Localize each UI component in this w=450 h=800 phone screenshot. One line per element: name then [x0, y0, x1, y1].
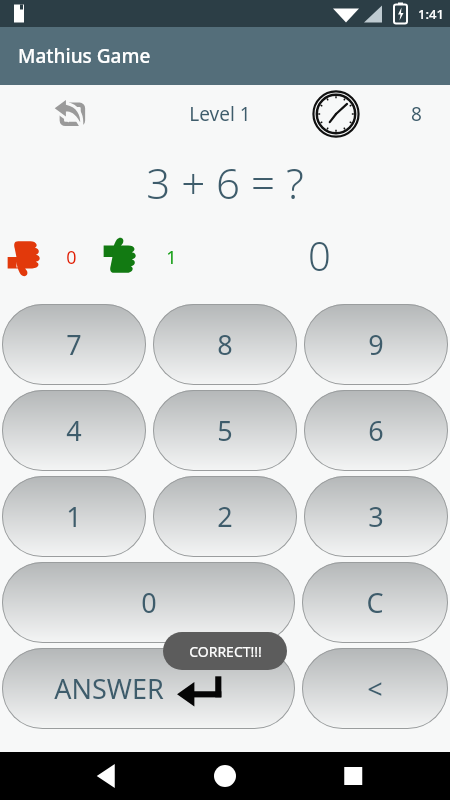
staticText: 7 — [66, 326, 82, 363]
staticText: C — [366, 584, 384, 621]
staticText: 3 — [368, 498, 384, 535]
button[interactable]: 6 — [304, 390, 448, 471]
button[interactable]: 3 — [304, 476, 448, 557]
button[interactable]: 7 — [2, 304, 146, 385]
button[interactable]: 1 — [2, 476, 146, 557]
staticText: 3 + 6 = ? — [146, 154, 304, 211]
staticText: 0 — [141, 584, 157, 621]
staticText: 1 — [166, 245, 177, 270]
button[interactable]: 5 — [153, 390, 297, 471]
button[interactable]: 4 — [2, 390, 146, 471]
button[interactable]: ANSWER — [2, 648, 295, 729]
staticText: Mathius Game — [18, 43, 151, 69]
staticText: 9 — [368, 326, 384, 363]
staticText: CORRECT!!! — [189, 642, 262, 661]
staticText: 8 — [217, 326, 233, 363]
staticText: 2 — [217, 498, 233, 535]
staticText: 4 — [66, 412, 82, 449]
button[interactable]: 0 — [2, 562, 295, 643]
button[interactable]: Correct answers — [98, 232, 148, 282]
staticText: ANSWER — [54, 670, 164, 707]
button[interactable]: Timer — [310, 88, 362, 140]
staticText: 1 — [66, 498, 82, 535]
button[interactable]: Wrong answers — [2, 232, 52, 282]
button[interactable]: 9 — [304, 304, 448, 385]
staticText: 5 — [217, 412, 233, 449]
button[interactable]: 2 — [153, 476, 297, 557]
staticText: 6 — [368, 412, 384, 449]
button[interactable]: C — [302, 562, 448, 643]
staticText: 0 — [66, 245, 77, 270]
button[interactable]: < — [302, 648, 448, 729]
button[interactable]: 8 — [153, 304, 297, 385]
staticText: 8 — [411, 101, 422, 127]
staticText: < — [367, 670, 383, 707]
staticText: 1:41 — [418, 5, 444, 23]
staticText: 0 — [308, 228, 331, 282]
staticText: Level 1 — [189, 101, 251, 127]
button[interactable]: Undo — [48, 92, 92, 136]
